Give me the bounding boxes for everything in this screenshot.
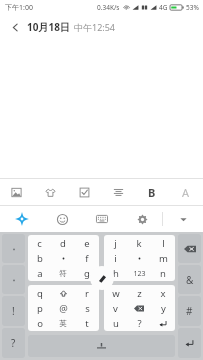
button[interactable]: j (104, 235, 127, 251)
button[interactable]: k (127, 235, 151, 251)
button[interactable]: l (151, 235, 175, 251)
button[interactable]: # (178, 296, 201, 326)
button[interactable]: o (28, 316, 51, 331)
button[interactable]: ! (2, 296, 25, 326)
button[interactable]: ? (127, 316, 151, 331)
button[interactable]: 符 (51, 266, 75, 281)
button[interactable]: · (51, 251, 75, 266)
staticText: w (112, 287, 120, 300)
staticText: 53% (186, 3, 199, 12)
button[interactable]: g (75, 266, 99, 281)
staticText: 123 (133, 269, 146, 279)
staticText: # (186, 304, 193, 318)
button[interactable]: i (104, 251, 127, 266)
button[interactable]: f (75, 251, 99, 266)
button[interactable]: m (151, 251, 175, 266)
button[interactable]: Input method logo (0, 206, 43, 232)
staticText: q (37, 287, 43, 300)
button[interactable]: v (104, 301, 127, 316)
button[interactable]: ? (2, 328, 25, 358)
button[interactable]: 英 (51, 316, 75, 331)
staticText: v (113, 302, 118, 315)
button[interactable]: ↵ (178, 328, 201, 358)
staticText: r (85, 287, 89, 300)
staticText: 0.34K/s (97, 3, 120, 12)
staticText: 10月18日 (27, 20, 70, 34)
button[interactable]: b (28, 251, 51, 266)
staticText: 中午12:54 (74, 21, 116, 33)
button[interactable]: Keyboard (82, 206, 122, 232)
staticText: i (114, 252, 117, 265)
button[interactable]: z (127, 285, 151, 301)
button[interactable]: r (75, 285, 99, 301)
staticText: n (160, 267, 166, 280)
button[interactable] (2, 265, 25, 294)
button[interactable] (2, 234, 25, 263)
button[interactable]: bold (135, 179, 169, 205)
staticText: u (113, 317, 119, 330)
button[interactable]: Back (6, 18, 24, 36)
button[interactable]: q (28, 285, 51, 301)
button[interactable]: a (28, 266, 51, 281)
button[interactable]: align (101, 179, 135, 205)
staticText: ? (137, 317, 142, 330)
button[interactable]: ⌫ (178, 234, 201, 263)
button[interactable]: @ (51, 301, 75, 316)
staticText: 符 (59, 269, 67, 278)
button[interactable]: italic (169, 179, 203, 205)
button[interactable]: h (104, 266, 127, 281)
button[interactable]: Settings (122, 206, 162, 232)
button[interactable]: Emoji (43, 206, 82, 232)
button[interactable]: ⇧ (51, 285, 75, 301)
staticText: 英 (59, 319, 67, 328)
button[interactable]: u (104, 316, 127, 331)
button[interactable]: Handwriting (90, 266, 114, 290)
button[interactable]: Collapse keyboard (163, 206, 203, 232)
staticText: l (162, 237, 165, 250)
staticText: B (148, 185, 156, 200)
staticText: g (84, 267, 90, 280)
button[interactable]: ⌫ (127, 301, 151, 316)
button[interactable]: p (28, 301, 51, 316)
staticText: z (137, 287, 142, 300)
staticText: t (85, 317, 89, 330)
button[interactable]: t (75, 316, 99, 331)
staticText: ? (11, 336, 16, 350)
staticText: & (186, 273, 194, 287)
staticText: 下午1:00 (5, 3, 33, 13)
staticText: c (37, 237, 42, 250)
staticText: 4G (159, 3, 168, 12)
button[interactable]: 123 (127, 266, 151, 281)
button[interactable]: c (28, 235, 51, 251)
button[interactable]: n (151, 266, 175, 281)
staticText: p (37, 302, 43, 315)
button[interactable]: shirt (33, 179, 67, 205)
button[interactable]: d (51, 235, 75, 251)
button[interactable]: w (104, 285, 127, 301)
staticText: a (37, 267, 43, 280)
staticText: j (114, 237, 117, 250)
staticText: s (85, 302, 90, 315)
button[interactable]: Space (28, 335, 175, 357)
staticText: m (159, 252, 168, 265)
staticText: b (37, 252, 43, 265)
staticText: d (60, 237, 66, 250)
button[interactable]: image (0, 179, 33, 205)
staticText: h (113, 267, 119, 280)
staticText: e (84, 237, 90, 250)
staticText: f (85, 252, 89, 265)
button[interactable]: x (151, 285, 175, 301)
staticText: ! (12, 304, 15, 318)
staticText: x (160, 287, 166, 300)
button[interactable]: · (127, 251, 151, 266)
staticText: y (161, 302, 166, 315)
staticText: o (37, 317, 43, 330)
button[interactable]: e (75, 235, 99, 251)
staticText: A (182, 185, 190, 200)
button[interactable]: s (75, 301, 99, 316)
button[interactable]: check (67, 179, 101, 205)
button[interactable]: & (178, 265, 201, 294)
button[interactable]: ↵ (151, 316, 175, 331)
button[interactable]: y (151, 301, 175, 316)
staticText: k (136, 237, 142, 250)
